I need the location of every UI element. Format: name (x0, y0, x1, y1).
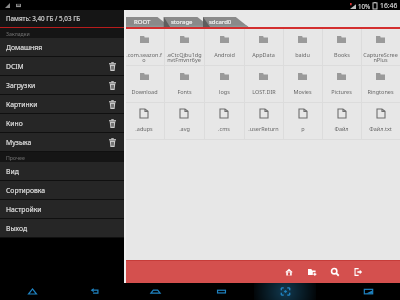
staticText: .cms (218, 125, 230, 132)
button[interactable]: logs (204, 66, 244, 103)
button[interactable]: Delete bookmark (106, 60, 119, 73)
staticText: DCIM (6, 62, 24, 71)
staticText: Файл (334, 125, 349, 132)
button[interactable]: .eCtcQjbu1dgnvtFmvnr6yep… (164, 29, 204, 66)
button[interactable]: sdcard0 (203, 17, 242, 27)
button[interactable]: .cms (204, 103, 244, 140)
staticText: 16:46 (380, 1, 398, 10)
staticText: ROOT (134, 18, 151, 26)
staticText: CaptureScreenPlus (363, 51, 398, 64)
staticText: p (301, 125, 305, 132)
button[interactable]: baidu (283, 29, 322, 66)
button[interactable]: Fonts (164, 66, 204, 103)
button[interactable]: Menu (1, 283, 63, 300)
button[interactable]: Movies (283, 66, 322, 103)
staticText: baidu (295, 51, 310, 58)
button[interactable]: Exit (350, 264, 366, 280)
button[interactable]: DCIM (0, 57, 124, 75)
button[interactable]: .userReturn (244, 103, 283, 140)
button[interactable]: Настройки (0, 200, 124, 218)
button[interactable]: Search (327, 264, 343, 280)
button[interactable]: Домашняя (0, 38, 124, 56)
button[interactable]: Home (281, 264, 297, 280)
button[interactable]: Home (124, 283, 186, 300)
button[interactable]: Screenshot (254, 283, 316, 300)
button[interactable]: Кино (0, 114, 124, 132)
staticText: .com.seazon.fo (126, 51, 162, 64)
staticText: .eCtcQjbu1dgnvtFmvnr6yep… (166, 51, 202, 64)
staticText: .userReturn (248, 125, 279, 132)
staticText: Настройки (6, 205, 42, 214)
staticText: Download (131, 88, 158, 95)
staticText: Android (214, 51, 235, 58)
button[interactable]: Recents (190, 283, 252, 300)
button[interactable]: .com.seazon.fo (124, 29, 164, 66)
staticText: Вид (6, 167, 19, 176)
staticText: Домашняя (6, 43, 43, 52)
staticText: Books (334, 51, 350, 58)
staticText: Movies (293, 88, 312, 95)
staticText: Загрузки (6, 81, 36, 90)
staticText: Прочее (6, 154, 25, 161)
button[interactable]: AppData (244, 29, 283, 66)
button[interactable]: Android (204, 29, 244, 66)
button[interactable]: Ringtones (361, 66, 400, 103)
button[interactable]: ROOT (124, 17, 164, 27)
button[interactable]: Сортировка (0, 181, 124, 199)
staticText: Fonts (177, 88, 192, 95)
staticText: Выход (6, 224, 28, 233)
button[interactable]: LOST.DIR (244, 66, 283, 103)
button[interactable]: Split screen (337, 283, 399, 300)
staticText: storage (171, 18, 193, 26)
button[interactable]: Файл.txt (361, 103, 400, 140)
button[interactable]: Выход (0, 219, 124, 237)
button[interactable]: Картинки (0, 95, 124, 113)
staticText: .avg (179, 125, 190, 132)
button[interactable]: Back (64, 283, 126, 300)
staticText: Кино (6, 119, 23, 128)
staticText: Файл.txt (369, 125, 392, 132)
staticText: logs (219, 88, 230, 95)
staticText: Картинки (6, 100, 38, 109)
button[interactable]: p (283, 103, 322, 140)
staticText: Pictures (331, 88, 352, 95)
button[interactable]: storage (164, 17, 203, 27)
staticText: Музыка (6, 138, 32, 147)
button[interactable]: Delete bookmark (106, 98, 119, 111)
button[interactable]: Delete bookmark (106, 136, 119, 149)
button[interactable]: .adups (124, 103, 164, 140)
button[interactable]: Pictures (322, 66, 361, 103)
button[interactable]: Вид (0, 162, 124, 180)
staticText: Ringtones (367, 88, 394, 95)
button[interactable]: Delete bookmark (106, 79, 119, 92)
staticText: .adups (135, 125, 153, 132)
button[interactable]: Books (322, 29, 361, 66)
button[interactable]: Музыка (0, 133, 124, 151)
staticText: sdcard0 (209, 18, 232, 26)
staticText: 10% (358, 2, 371, 10)
button[interactable]: Delete bookmark (106, 117, 119, 130)
button[interactable]: New folder (304, 264, 320, 280)
button[interactable]: Download (124, 66, 164, 103)
staticText: LOST.DIR (252, 88, 276, 95)
button[interactable]: Файл (322, 103, 361, 140)
staticText: Память: 3,40 ГБ / 5,03 ГБ (6, 14, 81, 23)
staticText: Закладки (6, 30, 30, 37)
button[interactable]: Загрузки (0, 76, 124, 94)
button[interactable]: .avg (164, 103, 204, 140)
staticText: Сортировка (6, 186, 46, 195)
button[interactable]: CaptureScreenPlus (361, 29, 400, 66)
staticText: AppData (252, 51, 275, 58)
